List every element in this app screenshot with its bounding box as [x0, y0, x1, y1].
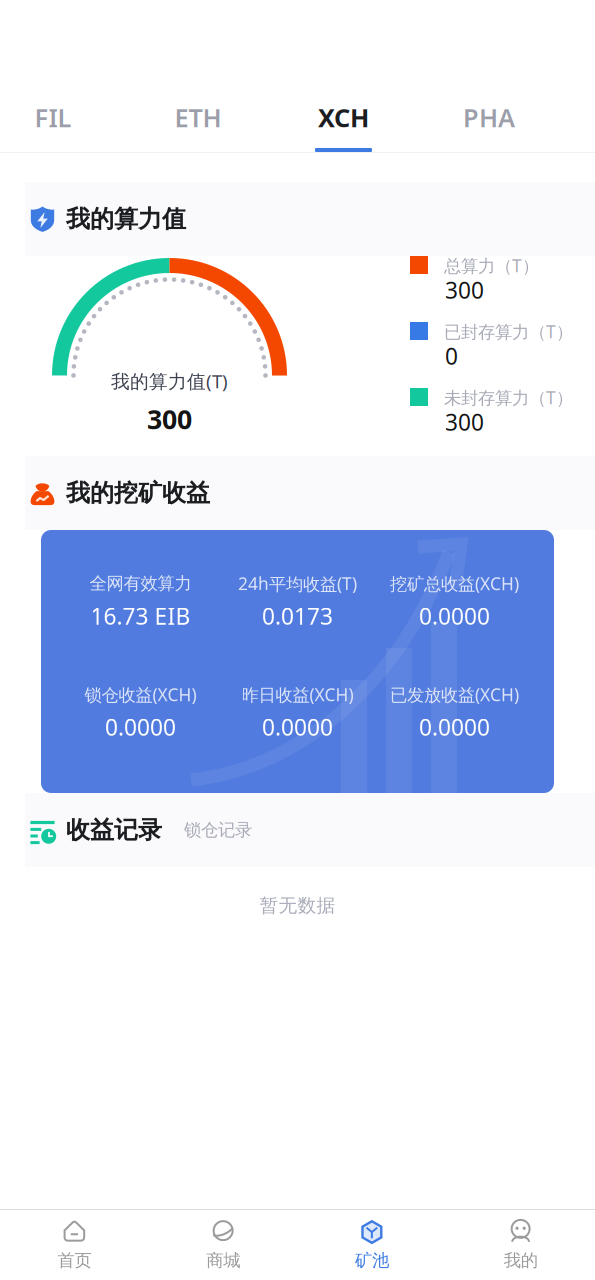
staticText: 我的: [504, 1250, 538, 1271]
staticText: PHA: [463, 101, 515, 134]
staticText: 锁仓收益(XCH): [84, 683, 196, 706]
staticText: 0.0000: [419, 712, 490, 742]
staticText: 我的算力值(T): [111, 369, 228, 393]
staticText: 300: [147, 401, 192, 437]
button[interactable]: 矿池: [297, 1210, 446, 1280]
staticText: 收益记录: [66, 815, 162, 845]
button[interactable]: 我的: [446, 1210, 595, 1280]
staticText: 已封存算力（T）: [444, 320, 573, 343]
staticText: 24h平均收益(T): [238, 572, 357, 595]
staticText: 总算力（T）: [444, 254, 539, 277]
staticText: 16.73 EIB: [90, 601, 190, 631]
staticText: 暂无数据: [259, 894, 335, 917]
button[interactable]: FIL: [0, 104, 125, 152]
staticText: ETH: [174, 101, 221, 134]
staticText: 我的算力值: [66, 204, 186, 234]
staticText: 我的挖矿收益: [66, 478, 210, 508]
staticText: 300: [445, 275, 484, 305]
staticText: 昨日收益(XCH): [241, 683, 353, 706]
staticText: 0.0000: [419, 601, 490, 631]
staticText: 首页: [57, 1250, 91, 1271]
button[interactable]: 商城: [149, 1210, 298, 1280]
staticText: 全网有效算力: [89, 573, 191, 594]
staticText: 未封存算力（T）: [444, 386, 573, 409]
staticText: 商城: [206, 1250, 240, 1271]
staticText: 0.0000: [262, 712, 333, 742]
staticText: 0: [445, 341, 458, 371]
staticText: 300: [445, 407, 484, 437]
button[interactable]: 首页: [0, 1210, 149, 1280]
staticText: 0.0173: [262, 601, 333, 631]
button[interactable]: XCH: [271, 104, 416, 152]
staticText: 已发放收益(XCH): [390, 683, 519, 706]
button[interactable]: ETH: [125, 104, 270, 152]
staticText: 挖矿总收益(XCH): [390, 572, 519, 595]
button[interactable]: PHA: [416, 104, 561, 152]
staticText: 锁仓记录: [184, 819, 252, 841]
staticText: XCH: [318, 101, 369, 134]
staticText: FIL: [34, 101, 71, 134]
staticText: 0.0000: [105, 712, 176, 742]
staticText: 矿池: [355, 1250, 389, 1271]
